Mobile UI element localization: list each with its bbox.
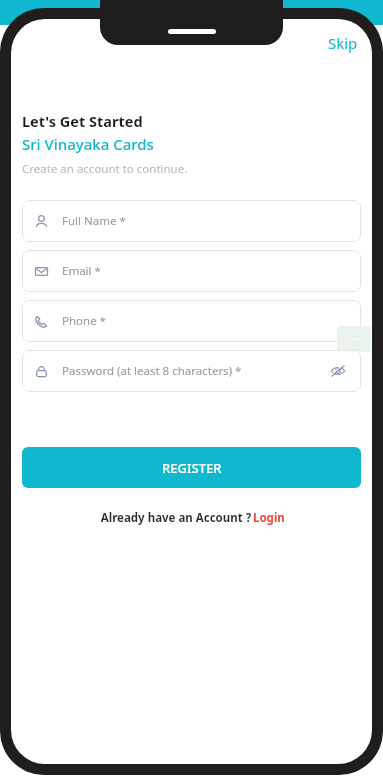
staticText: Already have an Account ? bbox=[99, 510, 253, 526]
staticText: Create an account to continue. bbox=[22, 161, 188, 177]
staticText: Skip bbox=[328, 33, 358, 53]
staticText: Let's Get Started bbox=[22, 111, 143, 131]
button[interactable]: Already have an Account ? bbox=[11, 510, 372, 526]
button[interactable]: Skip bbox=[322, 29, 364, 57]
staticText: Password (at least 8 characters) * bbox=[62, 363, 242, 379]
staticText: REGISTER bbox=[162, 459, 222, 477]
staticText: Email * bbox=[62, 263, 101, 279]
button[interactable]: REGISTER bbox=[22, 447, 361, 488]
staticText: Login bbox=[253, 510, 285, 526]
staticText: Sri Vinayaka Cards bbox=[22, 134, 154, 154]
button[interactable]: Email * bbox=[22, 250, 361, 292]
staticText: Phone * bbox=[62, 313, 106, 329]
button[interactable]: Phone * bbox=[22, 300, 361, 342]
staticText: Full Name * bbox=[62, 213, 126, 229]
button[interactable]: Password (at least 8 characters) * bbox=[22, 350, 361, 392]
button[interactable]: Show password bbox=[327, 360, 349, 382]
button[interactable]: Full Name * bbox=[22, 200, 361, 242]
